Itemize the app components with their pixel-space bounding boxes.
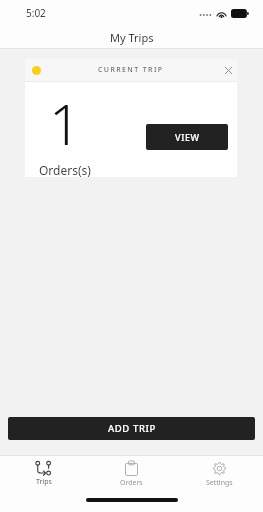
staticText: Orders(s) xyxy=(39,162,91,177)
staticText: Trips xyxy=(36,477,52,487)
button[interactable]: ADD TRIP xyxy=(8,417,255,440)
staticText: Settings xyxy=(206,478,233,488)
button[interactable]: Orders xyxy=(87,456,175,492)
staticText: 5:02 xyxy=(26,6,46,20)
button[interactable]: Trips xyxy=(0,456,87,492)
staticText: ADD TRIP xyxy=(108,422,156,435)
staticText: CURRENT TRIP xyxy=(98,65,164,75)
button[interactable]: Close xyxy=(219,61,237,79)
button[interactable]: Settings xyxy=(175,456,263,492)
staticText: VIEW xyxy=(175,131,200,143)
staticText: 1 xyxy=(49,85,81,161)
button[interactable]: VIEW xyxy=(146,124,228,150)
staticText: Orders xyxy=(120,478,143,488)
staticText: My Trips xyxy=(110,30,154,45)
